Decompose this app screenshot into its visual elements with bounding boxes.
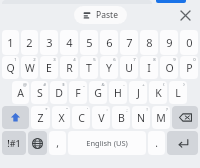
button[interactable]: D: [50, 81, 67, 104]
staticText: 6: [113, 57, 116, 63]
staticText: *: [45, 107, 48, 113]
staticText: M: [156, 111, 166, 125]
staticText: ;: [126, 107, 128, 113]
button[interactable]: Change keyboard language: [28, 131, 47, 155]
button[interactable]: L: [169, 81, 187, 104]
button[interactable]: .: [148, 131, 165, 155]
staticText: 8: [146, 35, 153, 50]
button[interactable]: 6: [100, 30, 118, 55]
staticText: ): [183, 82, 185, 88]
staticText: G: [94, 86, 102, 100]
button[interactable]: 0: [180, 30, 198, 55]
button[interactable]: S: [31, 81, 48, 104]
staticText: U: [125, 61, 133, 75]
button[interactable]: ,: [49, 131, 66, 155]
button[interactable]: G: [89, 81, 107, 104]
staticText: +: [142, 82, 145, 88]
staticText: Paste: [96, 9, 118, 21]
staticText: P: [186, 61, 193, 75]
staticText: C: [78, 111, 85, 125]
staticText: 5: [86, 35, 93, 50]
button[interactable]: K: [149, 81, 167, 104]
button[interactable]: Shift: [2, 106, 29, 129]
button[interactable]: M: [152, 106, 170, 129]
button[interactable]: 5: [80, 30, 98, 55]
button[interactable]: Space: [68, 131, 146, 155]
staticText: English (US): [86, 138, 128, 148]
staticText: 2: [26, 35, 33, 50]
button[interactable]: 9: [160, 30, 178, 55]
staticText: 4: [66, 35, 73, 50]
staticText: L: [175, 86, 181, 100]
staticText: Y: [106, 61, 112, 75]
staticText: J: [137, 86, 140, 100]
button[interactable]: Backspace: [172, 106, 198, 129]
button[interactable]: N: [132, 106, 150, 129]
staticText: !#1: [7, 137, 21, 149]
staticText: H: [114, 86, 122, 100]
button[interactable]: H: [109, 81, 127, 104]
staticText: _: [83, 82, 85, 88]
staticText: W: [25, 61, 35, 75]
staticText: 0: [186, 35, 193, 50]
staticText: B: [118, 111, 125, 125]
button[interactable]: V: [92, 106, 110, 129]
staticText: O: [165, 61, 174, 75]
staticText: T: [86, 61, 92, 75]
staticText: ': [87, 107, 88, 113]
staticText: 5: [93, 57, 96, 63]
staticText: #: [43, 82, 46, 88]
button[interactable]: B: [112, 106, 130, 129]
staticText: -: [123, 82, 125, 88]
button[interactable]: Y: [100, 56, 118, 79]
staticText: 9: [173, 57, 176, 63]
button[interactable]: Enter: [167, 131, 198, 155]
staticText: 3: [53, 57, 56, 63]
staticText: 7: [126, 35, 133, 50]
staticText: A: [17, 86, 24, 100]
staticText: 4: [73, 57, 76, 63]
button[interactable]: 4: [60, 30, 78, 55]
button[interactable]: Paste: [74, 6, 127, 24]
staticText: 1: [14, 57, 17, 63]
staticText: &: [101, 82, 105, 88]
staticText: D: [55, 86, 63, 100]
button[interactable]: R: [60, 56, 78, 79]
staticText: ?: [166, 107, 168, 113]
staticText: ": [66, 107, 68, 113]
button[interactable]: W: [21, 56, 38, 79]
staticText: S: [37, 86, 43, 100]
button[interactable]: 1: [2, 30, 19, 55]
button[interactable]: C: [72, 106, 90, 129]
staticText: $: [62, 82, 65, 88]
staticText: Q: [6, 61, 15, 75]
button[interactable]: 3: [40, 30, 58, 55]
staticText: I: [147, 61, 151, 75]
button[interactable]: X: [52, 106, 70, 129]
button[interactable]: Close: [177, 7, 193, 23]
button[interactable]: 8: [140, 30, 158, 55]
button[interactable]: E: [40, 56, 58, 79]
button[interactable]: P: [180, 56, 198, 79]
staticText: :: [106, 107, 108, 113]
staticText: 7: [133, 57, 136, 63]
staticText: X: [58, 111, 65, 125]
button[interactable]: Q: [2, 56, 19, 79]
button[interactable]: 2: [21, 30, 38, 55]
staticText: N: [137, 111, 145, 125]
staticText: 1: [7, 35, 14, 50]
staticText: !: [146, 107, 148, 113]
button[interactable]: !#1: [2, 131, 26, 155]
staticText: (: [163, 82, 165, 88]
button[interactable]: 7: [120, 30, 138, 55]
button[interactable]: Z: [31, 106, 50, 129]
button[interactable]: J: [129, 81, 147, 104]
button[interactable]: A: [12, 81, 29, 104]
button[interactable]: I: [140, 56, 158, 79]
staticText: V: [98, 111, 105, 125]
button[interactable]: F: [69, 81, 87, 104]
button[interactable]: T: [80, 56, 98, 79]
staticText: 2: [33, 57, 36, 63]
button[interactable]: U: [120, 56, 138, 79]
button[interactable]: O: [160, 56, 178, 79]
